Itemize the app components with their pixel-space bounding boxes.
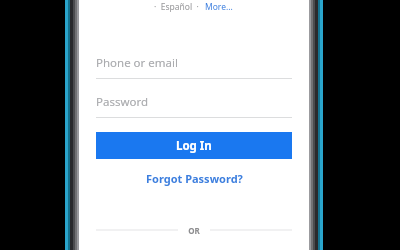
button[interactable]: More...	[204, 1, 234, 13]
button[interactable]: Phone or email	[96, 55, 292, 79]
staticText: Phone or email	[96, 55, 178, 71]
staticText: Forgot Password?	[146, 171, 243, 186]
staticText: More...	[205, 1, 233, 13]
staticText: OR	[188, 225, 200, 236]
staticText: Password	[96, 94, 149, 110]
staticText: · Español ·	[154, 1, 199, 13]
staticText: Log In	[176, 138, 212, 154]
button[interactable]: Password	[96, 94, 292, 118]
button[interactable]: Log In	[96, 132, 292, 159]
button[interactable]: Forgot Password?	[96, 168, 292, 188]
